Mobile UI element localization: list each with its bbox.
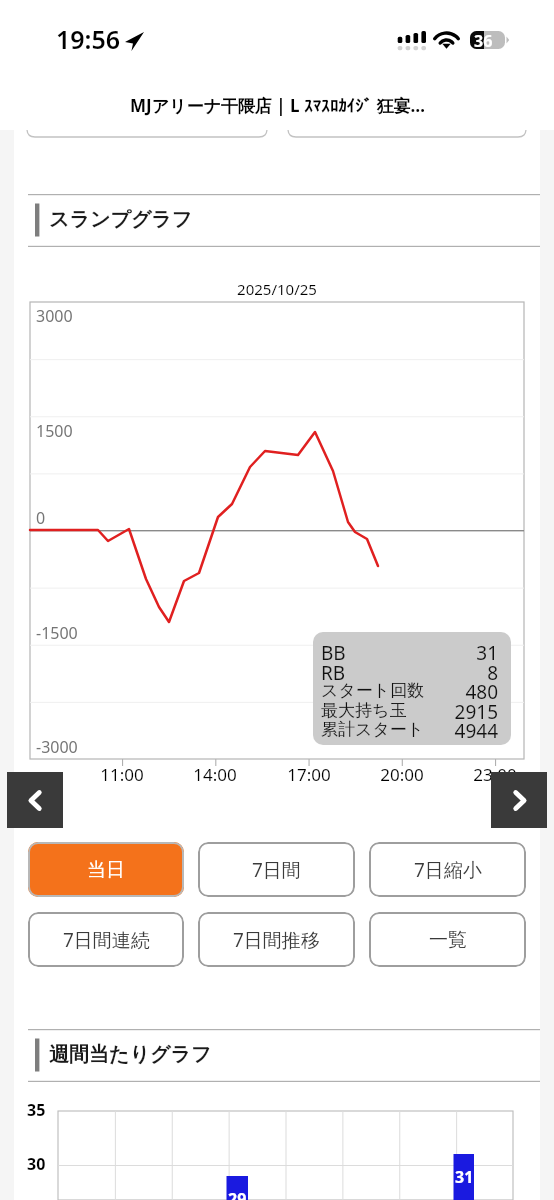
staticText: 17:00 bbox=[287, 763, 331, 786]
staticText: 7日間推移 bbox=[233, 927, 320, 953]
staticText: 累計スタート bbox=[321, 719, 425, 740]
staticText: 11:00 bbox=[100, 763, 144, 786]
staticText: 23:00 bbox=[473, 763, 517, 786]
button[interactable]: 一覧 bbox=[369, 912, 526, 967]
staticText: 一覧 bbox=[429, 928, 467, 952]
staticText: -1500 bbox=[36, 622, 78, 644]
staticText: 7日間 bbox=[252, 857, 301, 883]
staticText: 31 bbox=[321, 640, 498, 666]
button[interactable]: 7日間連続 bbox=[28, 912, 184, 967]
staticText: 7日縮小 bbox=[414, 857, 482, 883]
staticText: スタート回数 bbox=[321, 680, 425, 701]
staticText: 29 bbox=[228, 1188, 247, 1200]
staticText: 最大持ち玉 bbox=[321, 700, 407, 721]
staticText: RB bbox=[321, 660, 346, 686]
staticText: 当日 bbox=[87, 858, 125, 882]
button[interactable]: 当日 bbox=[28, 842, 184, 897]
staticText: 35 bbox=[27, 1099, 46, 1121]
staticText: 31 bbox=[455, 1166, 474, 1188]
staticText: MJアリーナ干隈店 | L ｽﾏｽﾛｶｲｼﾞ 狂宴… bbox=[130, 94, 425, 117]
staticText: 20:00 bbox=[380, 763, 424, 786]
button[interactable]: 7日間 bbox=[198, 842, 355, 897]
button[interactable]: 7日縮小 bbox=[369, 842, 526, 897]
staticText: 36 bbox=[474, 30, 493, 52]
staticText: 14:00 bbox=[193, 763, 237, 786]
button[interactable]: Previous bbox=[7, 772, 63, 828]
staticText: 7日間連続 bbox=[63, 927, 150, 953]
staticText: 2915 bbox=[321, 699, 498, 725]
staticText: 0 bbox=[36, 507, 46, 529]
button[interactable]: Next bbox=[491, 772, 547, 828]
staticText: 1500 bbox=[36, 420, 73, 442]
staticText: 480 bbox=[321, 679, 498, 705]
staticText: -3000 bbox=[36, 736, 78, 758]
button[interactable]: 7日間推移 bbox=[198, 912, 355, 967]
staticText: 3000 bbox=[36, 305, 73, 327]
staticText: 19:56 bbox=[56, 22, 121, 56]
staticText: スランプグラフ bbox=[49, 207, 193, 232]
staticText: 4944 bbox=[321, 718, 498, 744]
staticText: BB bbox=[321, 640, 346, 666]
staticText: 30 bbox=[27, 1153, 46, 1175]
staticText: 週間当たりグラフ bbox=[49, 1042, 212, 1067]
staticText: 2025/10/25 bbox=[0, 279, 554, 299]
staticText: 8 bbox=[321, 660, 498, 686]
